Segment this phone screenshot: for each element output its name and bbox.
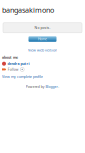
staticText: Follow [8, 67, 19, 72]
staticText: bangasakimono [2, 5, 54, 15]
staticText: about me [2, 55, 18, 60]
button[interactable]: Home [28, 36, 56, 42]
staticText: View web version [28, 48, 57, 52]
staticText: . [58, 84, 59, 89]
button[interactable]: Blogger [45, 84, 57, 89]
staticText: No posts. [34, 25, 50, 30]
staticText: Home [38, 37, 47, 41]
button[interactable]: Follow options [20, 67, 24, 71]
button[interactable]: View web version [0, 48, 85, 52]
staticText: View my complete profile [2, 74, 43, 79]
staticText: Blogger [45, 84, 57, 89]
staticText: dendra putri [7, 61, 29, 66]
staticText: Powered by [26, 84, 45, 89]
button[interactable]: View my complete profile [2, 74, 43, 79]
button[interactable]: dendra putri [2, 61, 29, 66]
